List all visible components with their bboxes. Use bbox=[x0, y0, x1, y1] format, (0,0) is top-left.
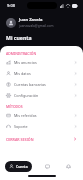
button[interactable]: Soporte bbox=[0, 121, 83, 132]
staticText: Configuración bbox=[14, 93, 39, 98]
button[interactable]: Configuración bbox=[0, 90, 83, 101]
staticText: Mis referidos bbox=[14, 113, 37, 118]
button[interactable]: Cuentas bancarias bbox=[0, 79, 83, 90]
staticText: Mis datos bbox=[14, 71, 31, 76]
staticText: Cuenta bbox=[16, 164, 28, 169]
staticText: Cuentas bancarias bbox=[14, 82, 46, 87]
button[interactable]: CERRAR SESIÓN bbox=[0, 134, 83, 144]
button[interactable]: Juan Zavala bbox=[0, 16, 83, 29]
button[interactable]: Mis datos bbox=[0, 68, 83, 79]
staticText: CERRAR SESIÓN bbox=[6, 137, 34, 142]
staticText: Mi cuenta bbox=[6, 34, 32, 41]
button[interactable]: Mis anuncios bbox=[0, 57, 83, 68]
button[interactable]: Mensajes bbox=[41, 160, 53, 172]
staticText: ADMINISTRACIÓN bbox=[6, 51, 37, 56]
button[interactable]: Mis referidos bbox=[0, 110, 83, 121]
staticText: Mis anuncios bbox=[14, 60, 37, 65]
staticText: Soporte bbox=[14, 124, 28, 129]
button[interactable]: Notificaciones bbox=[62, 160, 74, 172]
staticText: MÉTODOS bbox=[6, 104, 23, 109]
staticText: 9:08 bbox=[7, 3, 15, 8]
staticText: Juan Zavala bbox=[19, 17, 43, 23]
button[interactable]: Cuenta bbox=[5, 161, 32, 172]
staticText: juanzavala@gmail.com bbox=[19, 24, 54, 28]
